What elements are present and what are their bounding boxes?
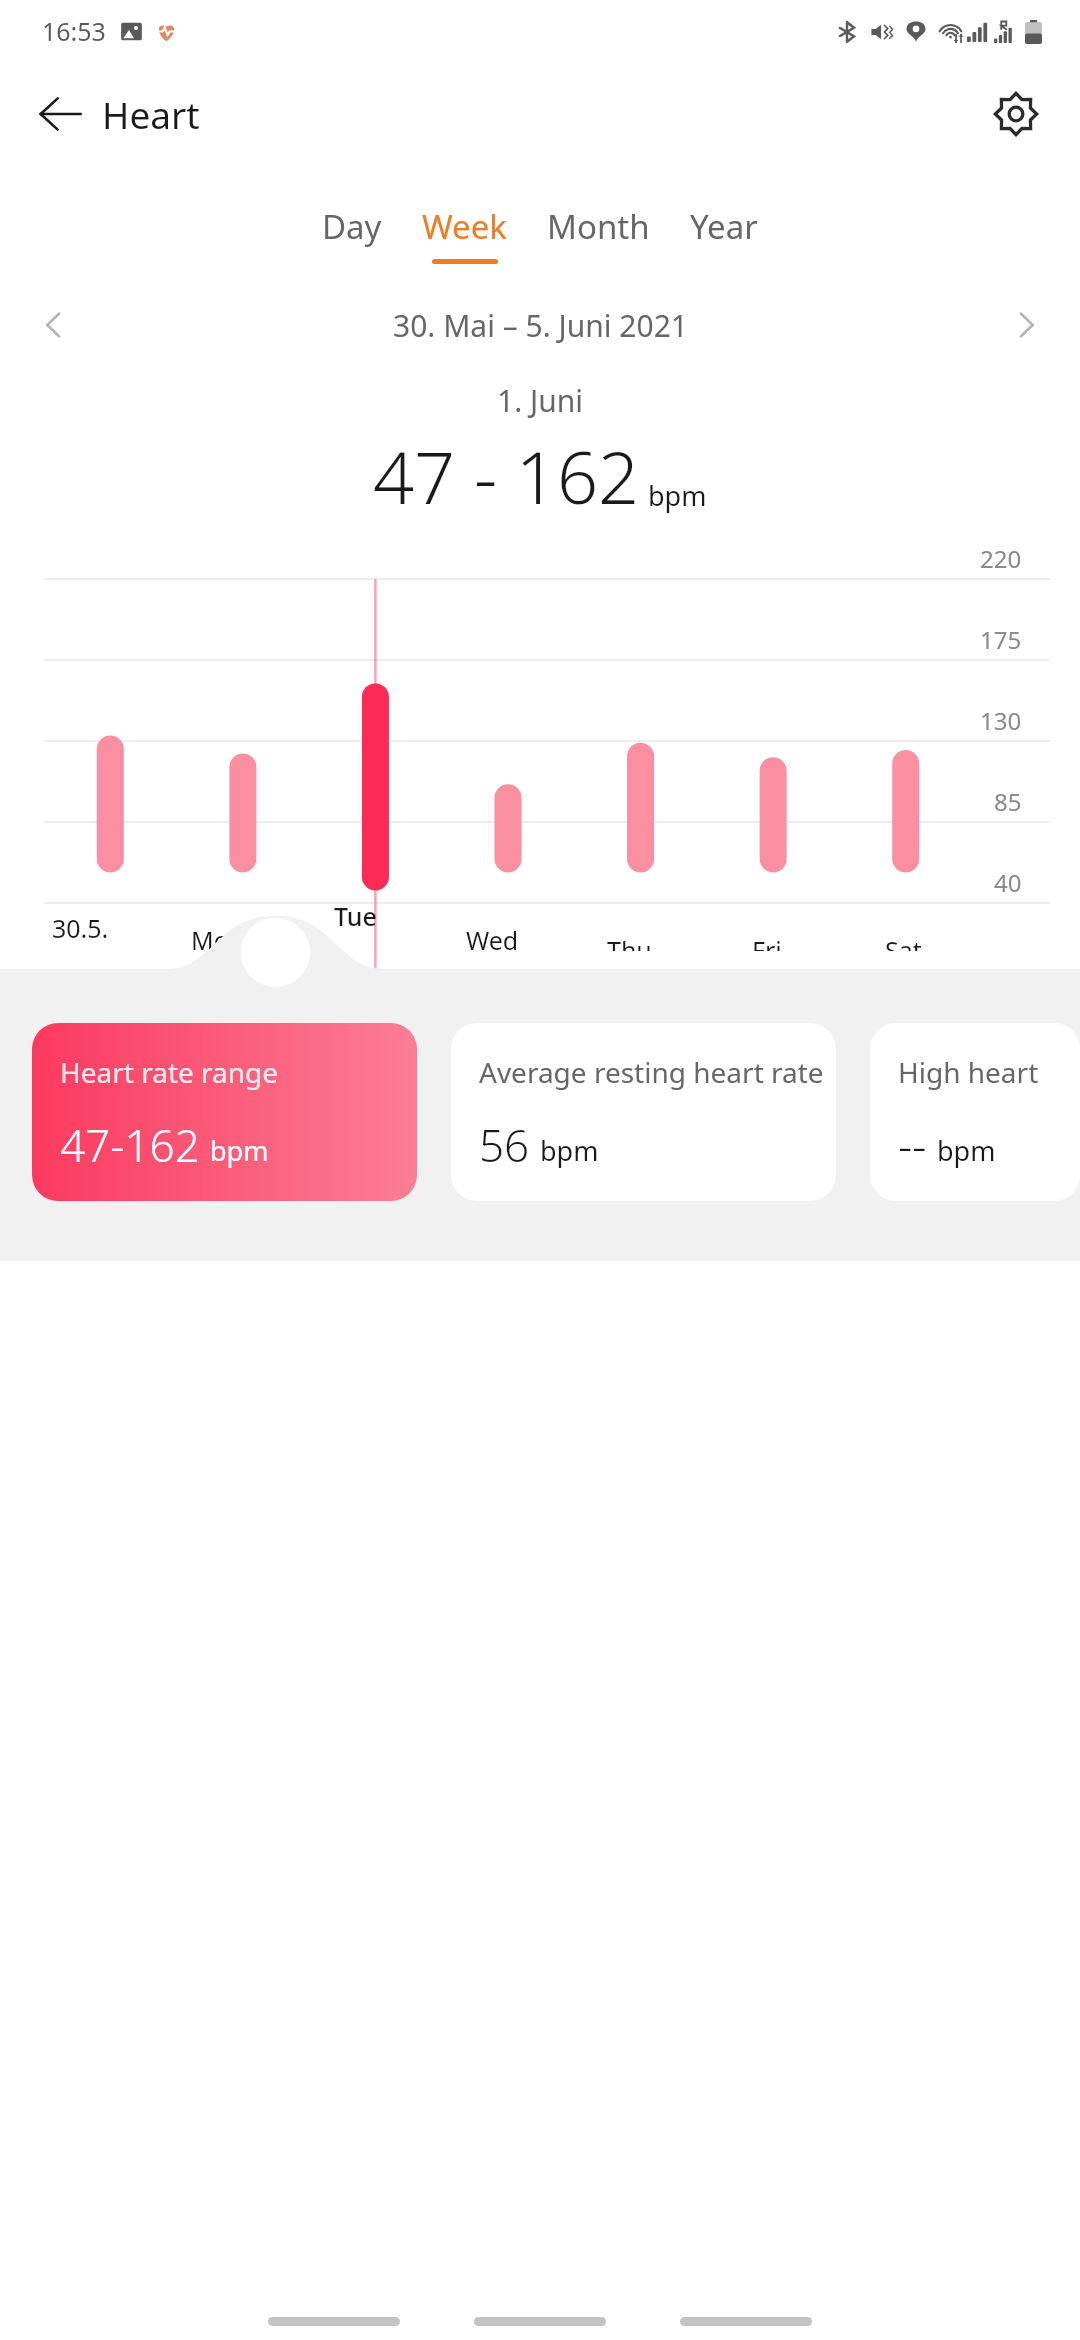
- staticText: bpm: [210, 1132, 269, 1169]
- staticText: 130: [980, 704, 1022, 737]
- button[interactable]: Previous week: [22, 293, 86, 357]
- staticText: 56: [479, 1115, 530, 1175]
- staticText: Heart: [102, 89, 200, 139]
- button[interactable]: Average resting heart rate: [451, 1023, 836, 1201]
- staticText: bpm: [540, 1132, 599, 1169]
- staticText: Month: [547, 204, 650, 249]
- button[interactable]: Next week: [994, 293, 1058, 357]
- staticText: Average resting heart rate: [479, 1053, 824, 1091]
- staticText: --: [898, 1115, 927, 1175]
- staticText: Day: [322, 204, 382, 249]
- button[interactable]: High heart rate: [870, 1023, 1080, 1201]
- staticText: Mon: [191, 923, 245, 951]
- staticText: High heart rate: [898, 1053, 1080, 1091]
- staticText: bpm: [937, 1132, 996, 1169]
- staticText: Fri: [752, 933, 782, 951]
- button[interactable]: Week: [412, 200, 517, 268]
- staticText: 30. Mai – 5. Juni 2021: [393, 305, 688, 346]
- staticText: Sat: [885, 933, 922, 951]
- staticText: 1. Juni: [497, 380, 584, 421]
- staticText: Thu: [607, 933, 652, 951]
- staticText: 47 - 162: [373, 427, 640, 525]
- staticText: 16:53: [42, 14, 106, 48]
- staticText: Heart rate range: [60, 1053, 279, 1091]
- staticText: 220: [980, 542, 1022, 575]
- staticText: 40: [994, 866, 1022, 899]
- button[interactable]: Year: [680, 200, 768, 268]
- button[interactable]: Settings: [978, 76, 1054, 152]
- staticText: Year: [690, 204, 758, 249]
- staticText: bpm: [648, 477, 707, 514]
- staticText: Tue: [334, 899, 377, 933]
- staticText: Wed: [466, 923, 519, 951]
- button[interactable]: Month: [537, 200, 660, 268]
- button[interactable]: Day: [312, 200, 392, 268]
- button[interactable]: Back: [24, 78, 96, 150]
- button[interactable]: Heart rate range: [32, 1023, 417, 1201]
- staticText: 175: [980, 623, 1022, 656]
- staticText: 85: [994, 785, 1022, 818]
- staticText: 30.5.: [52, 911, 109, 945]
- staticText: Week: [422, 204, 507, 249]
- staticText: 47-162: [60, 1115, 200, 1175]
